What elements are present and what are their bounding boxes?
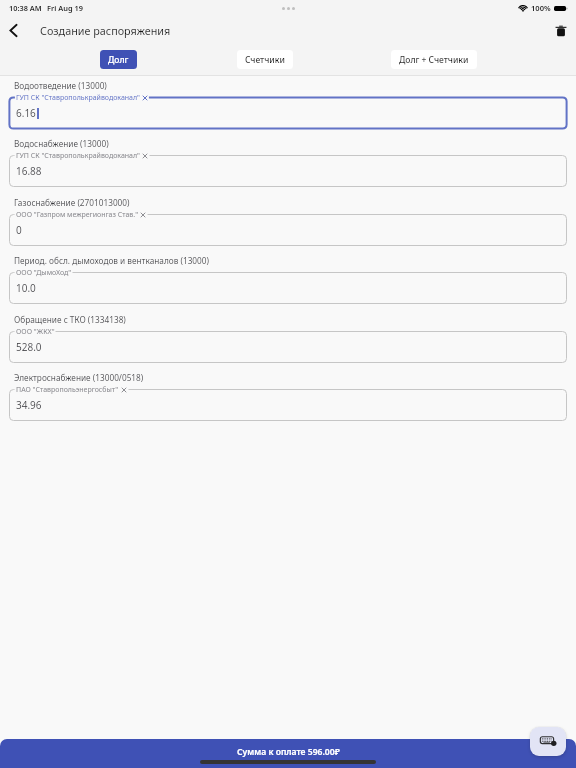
staticText: 6.16	[16, 106, 36, 120]
staticText: 16.88	[16, 164, 42, 178]
staticText: Период. обсл. дымоходов и вентканалов (1…	[14, 255, 209, 266]
staticText: Долг + Счетчики	[399, 54, 469, 66]
staticText: ГУП СК "Ставрополькрайводоканал"	[16, 93, 140, 103]
staticText: ГУП СК "Ставрополькрайводоканал"	[16, 151, 140, 161]
staticText: 0	[16, 223, 22, 237]
staticText: Счетчики	[245, 54, 285, 66]
staticText: Долг	[108, 54, 129, 66]
staticText: 10.0	[16, 281, 36, 295]
staticText: 10:38 AM	[9, 3, 42, 13]
staticText: ООО "Газпром межрегионгаз Став."	[16, 210, 138, 220]
button[interactable]: Clear	[140, 212, 146, 218]
button[interactable]: Hide keyboard	[530, 727, 566, 756]
staticText: ООО "ЖКХ"	[16, 327, 55, 337]
button[interactable]: Back	[0, 15, 29, 46]
staticText: Водоотведение (13000)	[14, 80, 107, 91]
staticText: Газоснабжение (2701013000)	[14, 197, 130, 208]
staticText: Водоснабжение (13000)	[14, 138, 109, 149]
staticText: ПАО "Ставропольэнергосбыт"	[16, 385, 119, 395]
staticText: 528.0	[16, 340, 42, 354]
button[interactable]: Долг + Счетчики	[391, 50, 477, 69]
button[interactable]: Сумма к оплате 596.00₽	[0, 739, 576, 768]
staticText: Электроснабжение (13000/0518)	[14, 372, 144, 383]
staticText: 34.96	[16, 398, 42, 412]
button[interactable]: Долг	[100, 50, 137, 69]
button[interactable]: Clear	[121, 387, 127, 393]
staticText: Сумма к оплате 596.00₽	[237, 746, 340, 758]
staticText: ООО "ДымоХод"	[16, 268, 72, 278]
staticText: Fri Aug 19	[47, 3, 83, 13]
button[interactable]: Delete	[545, 15, 576, 46]
staticText: Создание распоряжения	[40, 23, 171, 38]
staticText: Обращение с ТКО (1334138)	[14, 314, 126, 325]
button[interactable]: Clear	[142, 153, 148, 159]
button[interactable]: Clear	[142, 95, 148, 101]
staticText: 100%	[531, 3, 551, 13]
button[interactable]: Счетчики	[237, 50, 293, 69]
